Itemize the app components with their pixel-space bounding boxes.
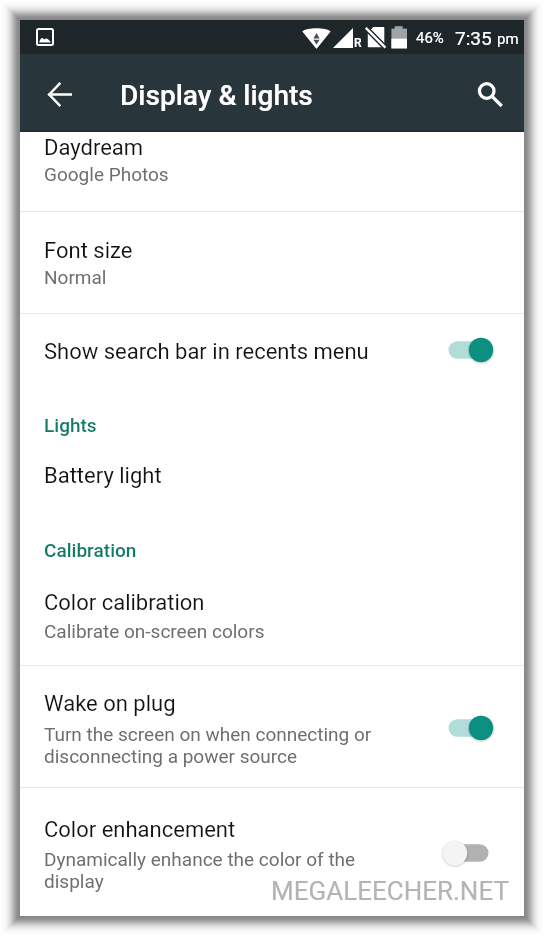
staticText: Color calibration bbox=[44, 590, 205, 616]
staticText: pm bbox=[497, 30, 519, 48]
staticText: Turn the screen on when connecting or di… bbox=[44, 723, 372, 768]
button[interactable] bbox=[20, 314, 524, 386]
staticText: Calibrate on-screen colors bbox=[44, 620, 265, 642]
staticText: Daydream bbox=[44, 135, 144, 161]
staticText: Dynamically enhance the color of the dis… bbox=[44, 848, 356, 893]
staticText: 7:35 bbox=[455, 27, 492, 49]
staticText: Wake on plug bbox=[44, 691, 176, 717]
staticText: Battery light bbox=[44, 463, 162, 489]
button[interactable] bbox=[20, 132, 524, 211]
button[interactable]: Switch on bbox=[428, 328, 496, 372]
staticText: Google Photos bbox=[44, 163, 169, 185]
button[interactable]: Search bbox=[463, 67, 511, 115]
button[interactable] bbox=[20, 212, 524, 313]
staticText: Normal bbox=[44, 266, 107, 288]
button[interactable] bbox=[20, 572, 524, 665]
staticText: Lights bbox=[44, 414, 97, 436]
staticText: Show search bar in recents menu bbox=[44, 339, 369, 365]
button[interactable] bbox=[20, 442, 524, 510]
staticText: Color enhancement bbox=[44, 817, 236, 843]
button[interactable]: Switch on bbox=[428, 706, 496, 750]
button[interactable] bbox=[20, 666, 524, 787]
button[interactable]: Switch off bbox=[428, 831, 496, 875]
staticText: Font size bbox=[44, 238, 133, 264]
staticText: 46% bbox=[416, 29, 444, 47]
staticText: MEGALEECHER.NET bbox=[271, 876, 509, 906]
button[interactable]: Navigate up bbox=[36, 70, 84, 118]
staticText: Display & lights bbox=[120, 79, 313, 112]
button[interactable] bbox=[20, 788, 524, 916]
staticText: R bbox=[354, 36, 362, 50]
staticText: Calibration bbox=[44, 539, 137, 561]
